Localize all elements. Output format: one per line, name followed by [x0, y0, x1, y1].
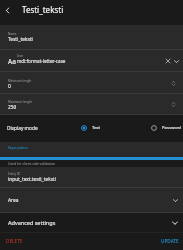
- staticText: Testi_teksti: [8, 36, 33, 43]
- staticText: mdi:format-letter-case: [17, 58, 66, 64]
- button[interactable]: Back: [0, 3, 14, 17]
- button[interactable]: DELETE: [2, 235, 27, 247]
- button[interactable]: Adjust value: [168, 99, 179, 110]
- button[interactable]: Advanced settings: [0, 213, 183, 232]
- button[interactable]: Maximum length: [0, 94, 183, 115]
- staticText: Aa: [8, 57, 16, 66]
- staticText: Entity ID: [8, 172, 20, 176]
- staticText: Icon: [17, 54, 24, 58]
- staticText: Display mode: [7, 125, 38, 132]
- button[interactable]: Area: [0, 188, 183, 213]
- staticText: Regex pattern: [8, 146, 28, 150]
- staticText: Minimum length: [8, 79, 32, 83]
- staticText: input_text.testi_teksti: [8, 176, 56, 183]
- button[interactable]: Name: [0, 25, 183, 50]
- button[interactable]: Entity ID: [0, 167, 183, 188]
- button[interactable]: Aa: [0, 50, 183, 72]
- staticText: 0: [8, 83, 11, 90]
- staticText: Password: [162, 125, 181, 131]
- staticText: Text: [92, 125, 101, 131]
- button[interactable]: Minimum length: [0, 72, 183, 94]
- button[interactable]: UPDATE: [159, 235, 181, 247]
- button[interactable]: Show icon options: [172, 57, 180, 65]
- button[interactable]: Clear icon: [164, 57, 172, 65]
- staticText: DELETE: [6, 238, 23, 244]
- button[interactable]: Password: [150, 123, 182, 133]
- staticText: UPDATE: [161, 238, 179, 244]
- staticText: Testi_teksti: [22, 4, 64, 15]
- button[interactable]: Regex pattern: [0, 142, 183, 160]
- staticText: Used for client-side validation: [8, 161, 56, 166]
- staticText: Name: [8, 32, 17, 36]
- staticText: Advanced settings: [8, 219, 56, 226]
- staticText: 250: [8, 104, 17, 111]
- staticText: Maximum length: [8, 100, 33, 104]
- button[interactable]: Adjust value: [168, 78, 179, 89]
- button[interactable]: Text: [80, 123, 102, 133]
- staticText: Area: [8, 197, 19, 204]
